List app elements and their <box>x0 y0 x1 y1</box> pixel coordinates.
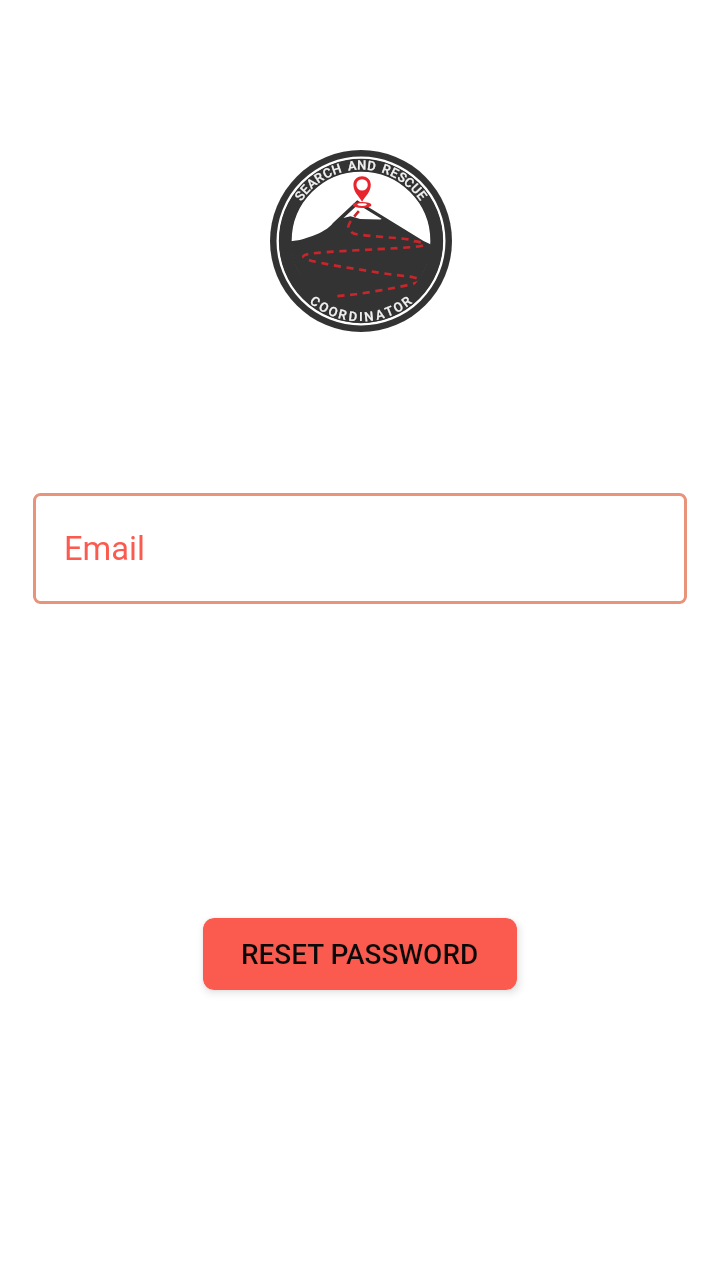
button[interactable]: RESET PASSWORD <box>203 918 517 990</box>
staticText: RESET PASSWORD <box>241 938 479 971</box>
other: Search and Rescue Coordinator logo <box>270 150 452 332</box>
staticText: Email <box>64 530 145 568</box>
button[interactable]: Email <box>33 493 687 604</box>
